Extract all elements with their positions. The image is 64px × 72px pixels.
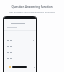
staticText: Question Answering function [0, 5, 64, 9]
button[interactable]: Ask a question [12, 66, 27, 68]
staticText: Get answers and explanations instantly [0, 10, 64, 13]
button[interactable] [4, 55, 36, 61]
button[interactable] [4, 49, 36, 55]
button[interactable] [4, 43, 36, 49]
button[interactable] [4, 37, 36, 43]
